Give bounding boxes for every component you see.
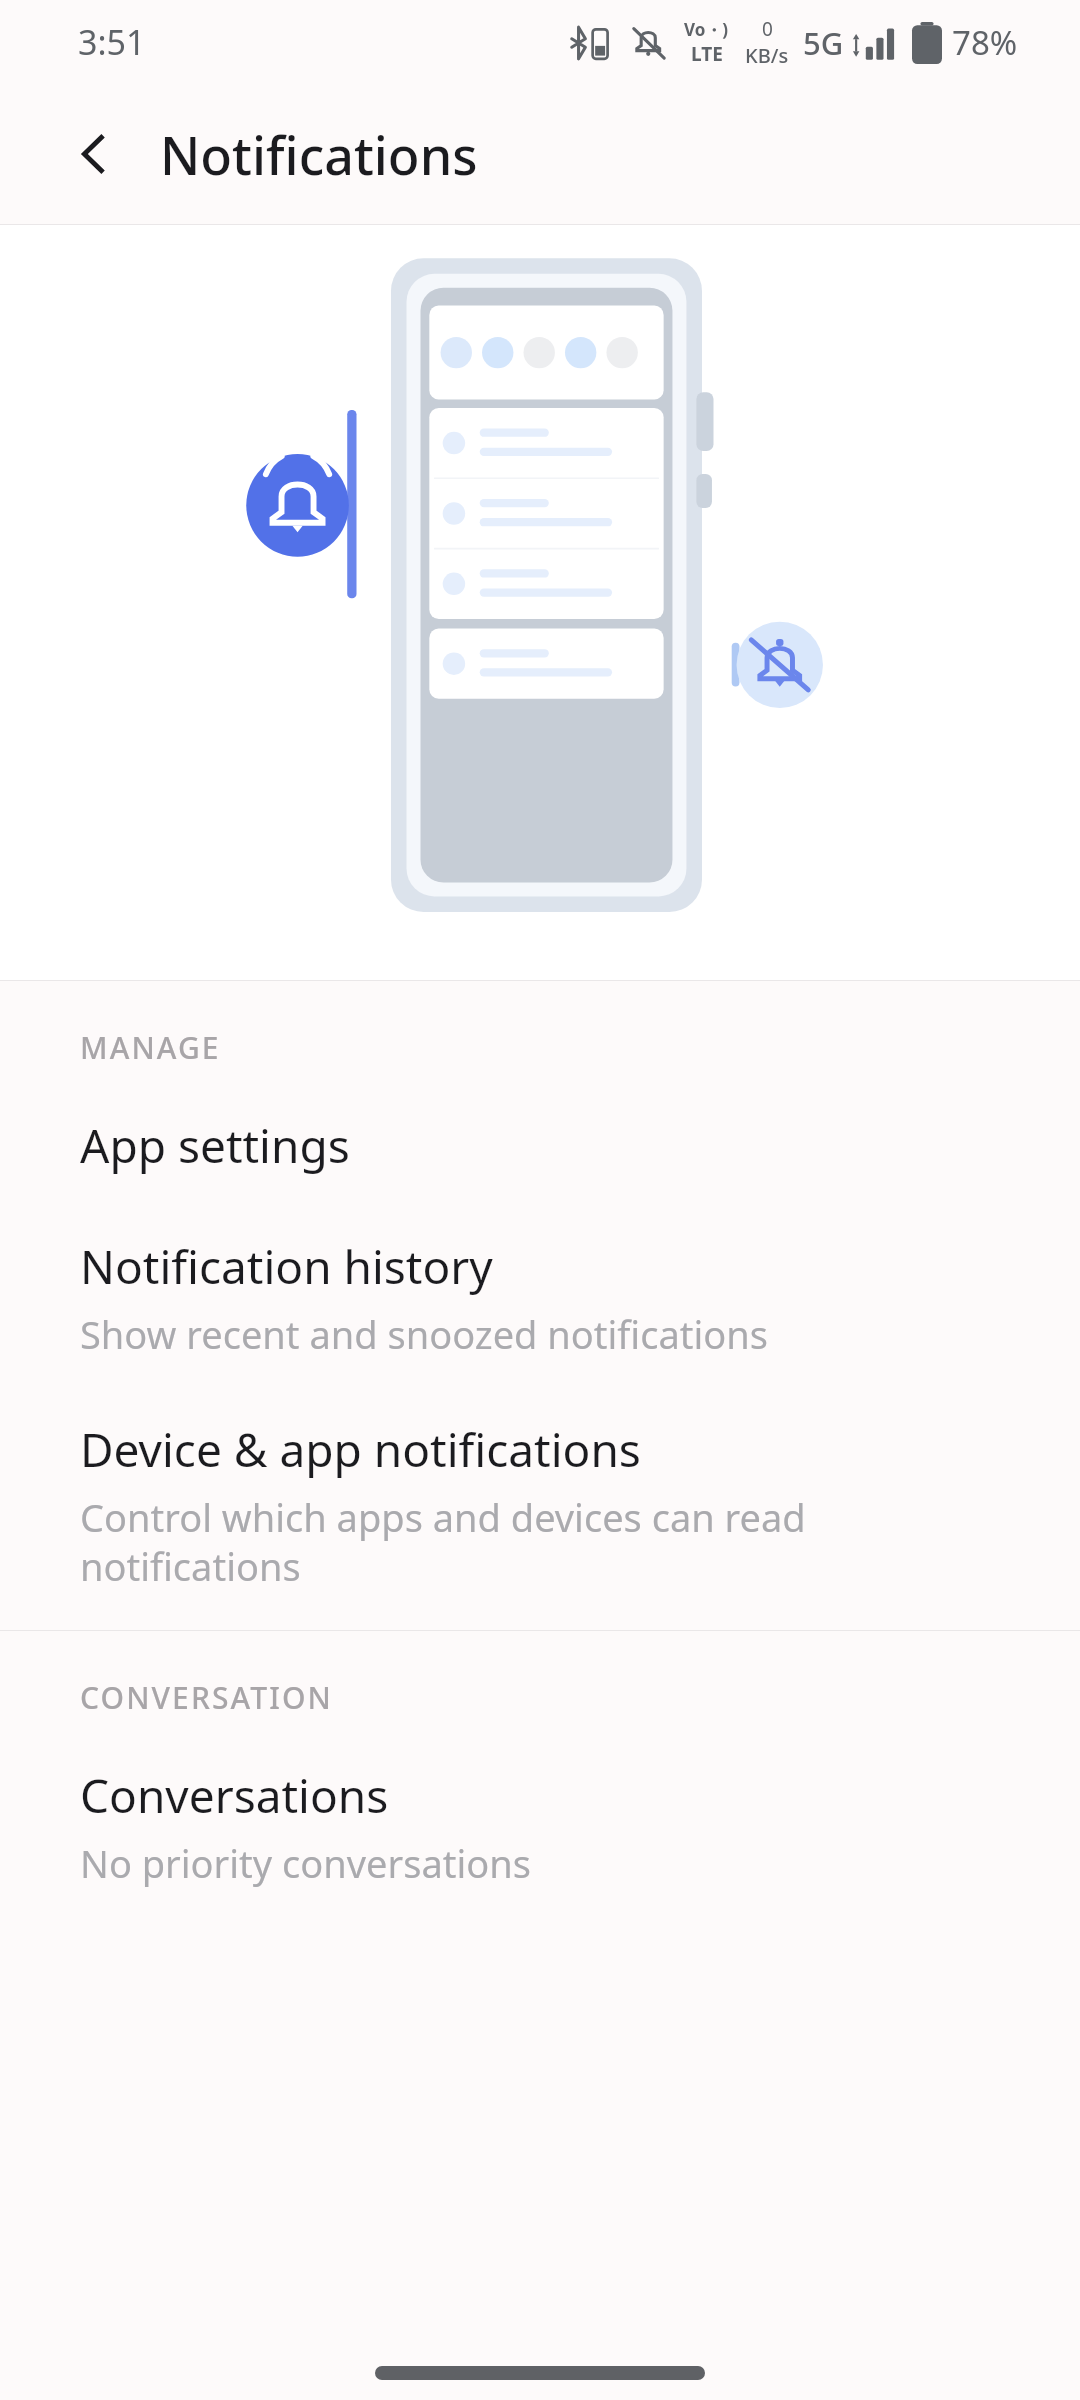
button[interactable]: App settings — [0, 1068, 1080, 1189]
staticText: Notification history — [80, 1235, 493, 1298]
staticText: Conversations — [80, 1764, 389, 1827]
staticText: No priority conversations — [80, 1837, 531, 1889]
button[interactable]: Device & app notifications — [0, 1372, 1080, 1604]
staticText: App settings — [80, 1114, 350, 1177]
staticText: 78% — [952, 20, 1018, 65]
staticText: KB/s — [745, 42, 789, 69]
button[interactable]: Conversations — [0, 1718, 1080, 1901]
staticText: Device & app notifications — [80, 1418, 641, 1481]
staticText: Vo・) — [684, 18, 729, 41]
staticText: 5G — [803, 22, 844, 64]
staticText: Show recent and snoozed notifications — [80, 1308, 768, 1360]
staticText: CONVERSATION — [80, 1677, 333, 1718]
staticText: LTE — [691, 41, 723, 67]
staticText: 3:51 — [78, 19, 146, 65]
button[interactable]: Notification history — [0, 1189, 1080, 1372]
staticText: Notifications — [160, 119, 478, 190]
staticText: Control which apps and devices can read … — [80, 1491, 1006, 1592]
staticText: 0 — [762, 16, 773, 42]
button[interactable]: Back — [52, 112, 136, 196]
staticText: MANAGE — [80, 1027, 221, 1068]
